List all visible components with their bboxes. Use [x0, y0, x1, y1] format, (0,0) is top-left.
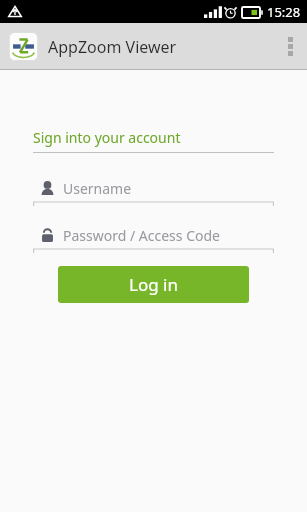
button[interactable]: Username — [33, 175, 274, 206]
button[interactable]: Password / Access Code — [33, 222, 274, 253]
staticText: Username — [63, 179, 132, 198]
button[interactable]: AppZoom logo — [9, 32, 38, 61]
staticText: Password / Access Code — [63, 226, 220, 245]
button[interactable]: More options — [273, 23, 307, 69]
staticText: AppZoom Viewer — [48, 36, 177, 58]
button[interactable]: Log in — [58, 266, 249, 303]
staticText: 15:28 — [267, 3, 301, 21]
staticText: Log in — [129, 273, 178, 296]
staticText: Sign into your account — [33, 128, 181, 147]
